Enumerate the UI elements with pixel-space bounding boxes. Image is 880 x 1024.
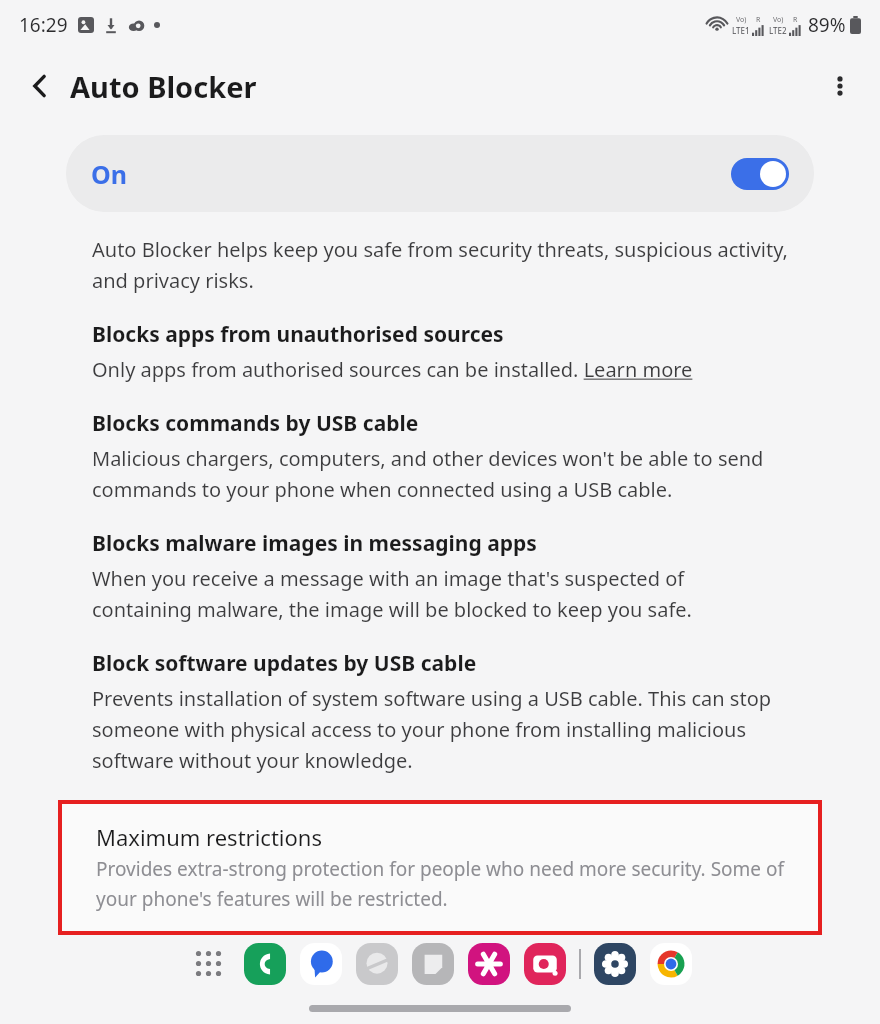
button[interactable]: Phone: [242, 941, 288, 987]
button[interactable]: On: [66, 135, 814, 212]
button[interactable]: Apps: [186, 941, 232, 987]
staticText: 89%: [808, 12, 846, 38]
button[interactable]: Settings: [592, 941, 638, 987]
staticText: Malicious chargers, computers, and other…: [92, 445, 788, 503]
staticText: LTE2: [769, 25, 787, 36]
staticText: Block software updates by USB cable: [92, 649, 477, 678]
button[interactable]: Camera: [522, 941, 568, 987]
staticText: Prevents installation of system software…: [92, 685, 788, 774]
button[interactable]: Gallery: [466, 941, 512, 987]
staticText: 16:29: [19, 12, 68, 38]
button[interactable]: More options: [814, 60, 866, 112]
button[interactable]: Only apps from authorised sources can be…: [92, 356, 693, 383]
staticText: R: [756, 15, 761, 25]
staticText: Vo): [736, 15, 747, 25]
staticText: Maximum restrictions: [96, 822, 322, 852]
button[interactable]: Chrome: [648, 941, 694, 987]
staticText: Blocks apps from unauthorised sources: [92, 320, 504, 349]
button[interactable]: Messages: [298, 941, 344, 987]
button[interactable]: Internet: [354, 941, 400, 987]
staticText: LTE1: [732, 25, 750, 36]
staticText: Blocks malware images in messaging apps: [92, 529, 537, 558]
button[interactable]: Maximum restrictions: [62, 804, 818, 931]
staticText: Only apps from authorised sources can be…: [92, 356, 693, 383]
staticText: On: [91, 157, 128, 191]
staticText: Auto Blocker: [70, 67, 257, 106]
staticText: When you receive a message with an image…: [92, 565, 788, 623]
button[interactable]: Notes: [410, 941, 456, 987]
staticText: R: [793, 15, 798, 25]
staticText: Auto Blocker helps keep you safe from se…: [92, 236, 788, 294]
staticText: Vo): [773, 15, 784, 25]
button[interactable]: Back: [14, 60, 66, 112]
staticText: Blocks commands by USB cable: [92, 409, 419, 438]
staticText: Provides extra-strong protection for peo…: [96, 856, 794, 911]
